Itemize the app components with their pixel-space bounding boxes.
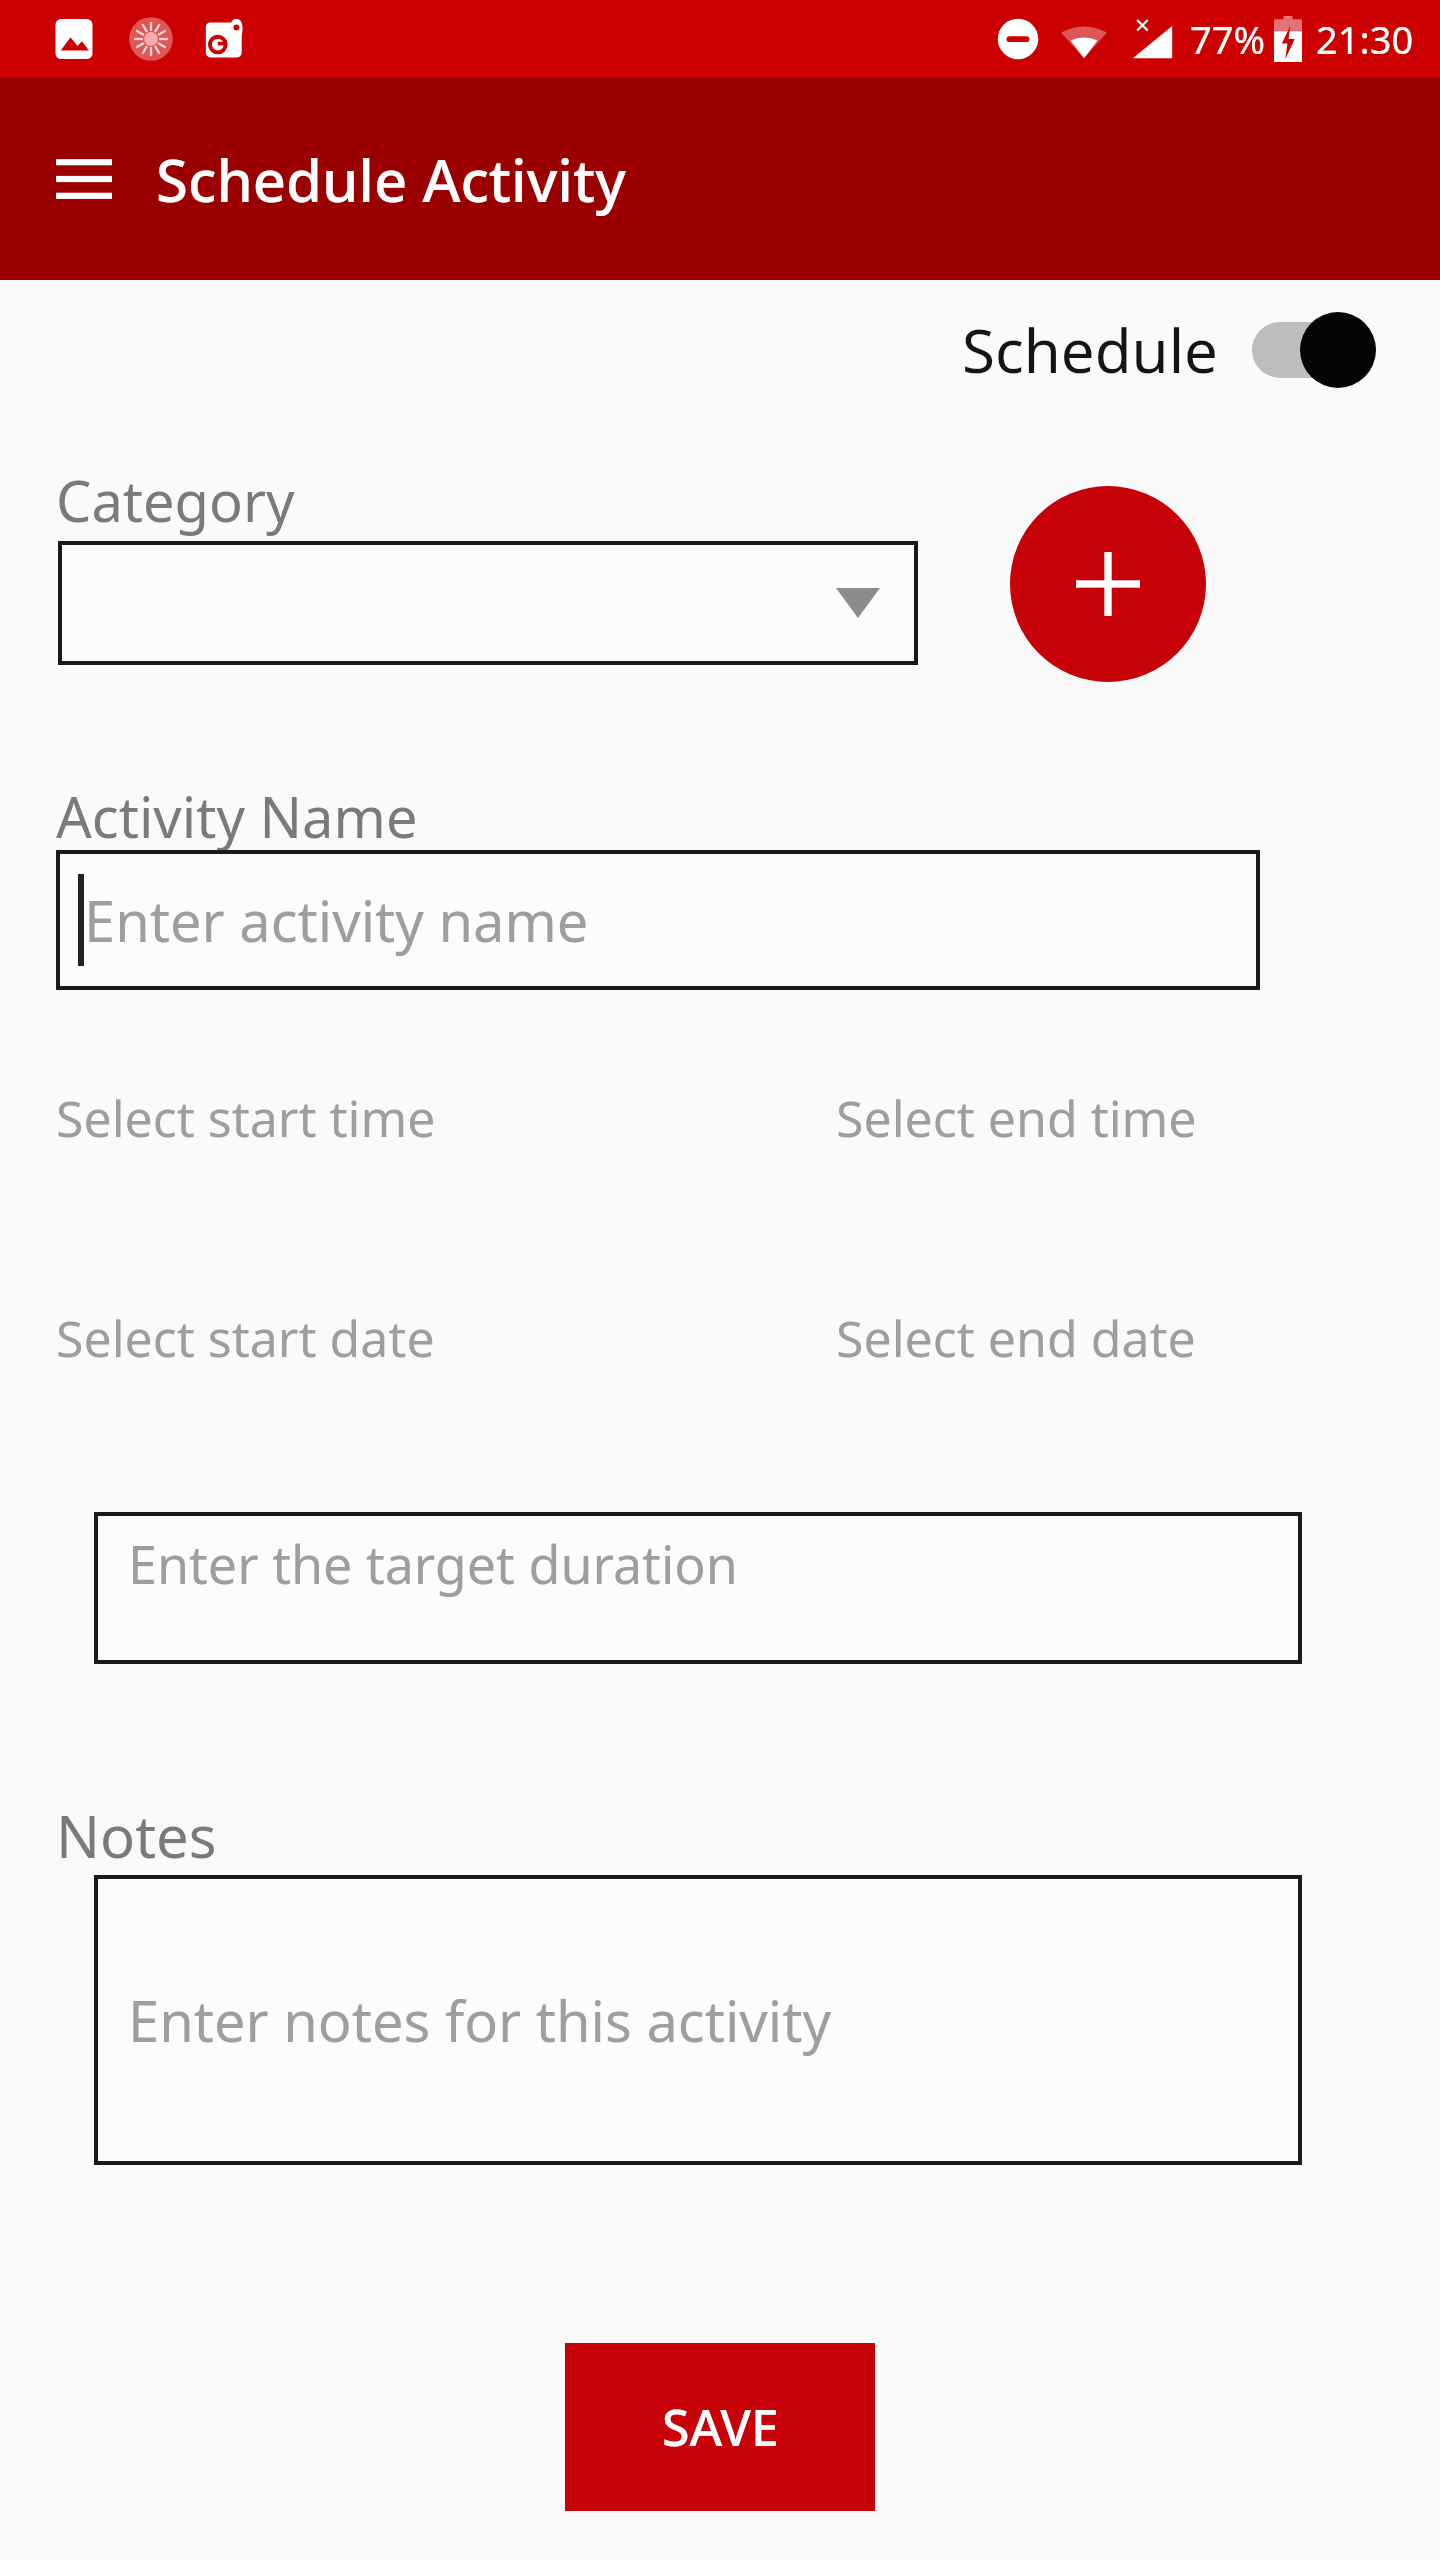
staticText: Schedule Activity — [156, 140, 626, 219]
button[interactable]: Schedule — [962, 308, 1376, 392]
button[interactable]: Enter the target duration — [94, 1512, 1302, 1664]
button[interactable]: Open navigation menu — [36, 131, 132, 227]
button[interactable]: Enter activity name — [56, 850, 1260, 990]
staticText: 77% — [1190, 13, 1266, 65]
button[interactable]: Enter notes for this activity — [94, 1875, 1302, 2165]
staticText: Select end date — [836, 1304, 1196, 1372]
staticText: 21:30 — [1316, 13, 1414, 65]
staticText: Enter activity name — [84, 882, 589, 958]
staticText: Notes — [56, 1796, 217, 1875]
staticText: SAVE — [662, 2393, 779, 2461]
staticText: Select start date — [56, 1304, 435, 1372]
button[interactable]: Select start time — [20, 1070, 640, 1166]
staticText: Schedule — [962, 309, 1218, 391]
button[interactable]: Select end time — [800, 1070, 1360, 1166]
button[interactable]: Add category — [1010, 486, 1206, 682]
staticText: Enter notes for this activity — [128, 1982, 832, 2058]
button[interactable]: Select start date — [20, 1290, 640, 1386]
staticText: Activity Name — [56, 778, 418, 854]
staticText: Category — [56, 462, 295, 538]
button[interactable]: Select end date — [800, 1290, 1360, 1386]
button[interactable]: SAVE — [565, 2343, 875, 2511]
staticText: Select end time — [836, 1084, 1197, 1152]
staticText: Enter the target duration — [128, 1528, 738, 1599]
button[interactable]: Select category — [58, 541, 918, 665]
staticText: Select start time — [56, 1084, 436, 1152]
